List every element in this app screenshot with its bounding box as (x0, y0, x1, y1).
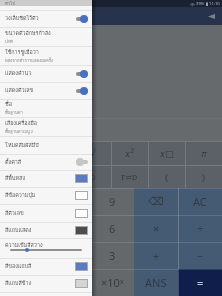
staticText: + (153, 248, 160, 263)
staticText: ) (202, 171, 206, 183)
staticText: 1 (19, 248, 26, 263)
staticText: 39% (196, 1, 205, 7)
button[interactable]: วงเล็บชิดไว้ตัว (0, 10, 92, 27)
staticText: 2 (64, 248, 71, 263)
staticText: 5 (64, 221, 71, 236)
button[interactable]: แสดงตัวเลข (0, 82, 92, 99)
staticText: 0 (19, 275, 26, 290)
staticText: พื้นฐานค่า (5, 109, 23, 116)
staticText: ( (165, 171, 169, 183)
staticText: สีแถบแสดง (5, 226, 32, 235)
staticText: ใช้การชูเมือว่า (5, 48, 39, 57)
button[interactable]: x² (111, 141, 148, 165)
button[interactable]: สีข้อความปุ่ม (0, 187, 92, 204)
button[interactable]: log (37, 165, 74, 188)
staticText: ทั่วไป (5, 0, 15, 6)
button[interactable]: เสียงเครื่องมือ (0, 117, 92, 136)
button[interactable]: ÷ (178, 215, 222, 242)
staticText: F⇄D (121, 172, 138, 182)
button[interactable]: 1 (0, 242, 45, 269)
button[interactable]: 6 (90, 215, 134, 242)
staticText: π (201, 147, 207, 159)
button[interactable]: × (134, 215, 178, 242)
button[interactable]: x□ (148, 141, 185, 165)
staticText: ขนาดตัวอักษรกำลัง (5, 29, 51, 38)
button[interactable]: 3 (90, 242, 134, 269)
button[interactable]: sin (0, 141, 37, 165)
button[interactable]: 8 (45, 188, 90, 215)
button[interactable]: ×10ˣ (90, 269, 134, 296)
staticText: − (197, 248, 204, 263)
staticText: sin (12, 147, 25, 159)
button[interactable]: ) (185, 165, 222, 188)
staticText: cos (49, 147, 63, 159)
staticText: × (153, 221, 160, 236)
staticText: ตั้งค่าสี (5, 158, 22, 167)
staticText: 9 (109, 194, 116, 209)
button[interactable]: Collapse panel (205, 10, 218, 23)
button[interactable]: ANS (134, 269, 178, 296)
button[interactable]: ⌫ (134, 188, 178, 215)
staticText: ANS (145, 275, 167, 290)
button[interactable]: แสดงคํานว (0, 65, 92, 82)
staticText: โหมดสัมผัสมีบั (5, 141, 39, 150)
button[interactable]: 0 (0, 269, 45, 296)
button[interactable]: สีพื้นหลัง (0, 170, 92, 187)
button[interactable]: π (185, 141, 222, 165)
button[interactable]: cos (37, 141, 74, 165)
button[interactable]: ชื่อ (0, 99, 92, 117)
button[interactable]: 4 (0, 215, 45, 242)
staticText: 6 (109, 221, 116, 236)
staticText: ∫ (16, 172, 21, 182)
button[interactable]: F⇄D (111, 165, 148, 188)
staticText: ÷ (197, 221, 204, 236)
staticText: เสียงเครื่องมือ (5, 119, 37, 128)
button[interactable]: 9 (90, 188, 134, 215)
button[interactable]: − (178, 242, 222, 269)
staticText: x□ (160, 147, 174, 159)
staticText: ▫ (89, 172, 96, 182)
staticText: สีของแถบสี (5, 262, 32, 271)
staticText: 8 (64, 194, 71, 209)
button[interactable]: ขนาดตัวอักษรกำลัง (0, 27, 92, 46)
button[interactable]: 2 (45, 242, 90, 269)
staticText: ×10ˣ (101, 275, 124, 290)
button[interactable]: สีตัวเลข (0, 204, 92, 222)
staticText: ความเข้มสีสว่าง (5, 241, 43, 250)
button[interactable]: = (178, 269, 222, 296)
button[interactable]: 5 (45, 215, 90, 242)
staticText: 4 (19, 221, 26, 236)
button[interactable]: สีแถบสีข้าง (0, 275, 92, 292)
staticText: 11:10 (209, 1, 220, 7)
staticText: สีแถบสีข้าง (5, 279, 32, 288)
staticText: 3 (109, 248, 116, 263)
staticText: . (66, 275, 69, 290)
button[interactable]: AC (178, 188, 222, 215)
staticText: สีพื้นหลัง (5, 174, 26, 183)
staticText: หลังจากทำการแสดงผลครั้ง (5, 57, 53, 64)
button[interactable]: + (134, 242, 178, 269)
button[interactable]: ความเข้มสีสว่าง (0, 238, 92, 258)
staticText: ชื่อ (5, 100, 12, 109)
button[interactable]: ∫ (0, 165, 37, 188)
staticText: = (197, 275, 204, 290)
button[interactable]: ใช้การชูเมือว่า (0, 46, 92, 65)
staticText: √ (90, 148, 96, 158)
staticText: แสดงคํานว (5, 69, 32, 78)
button[interactable]: ▫ (74, 165, 111, 188)
staticText: x² (125, 147, 134, 159)
button[interactable]: ( (148, 165, 185, 188)
button[interactable]: . (45, 269, 90, 296)
staticText: สีข้อความปุ่ม (5, 191, 36, 200)
button[interactable]: ตั้งค่าสี (0, 154, 92, 170)
button[interactable]: √ (74, 141, 111, 165)
staticText: ⌫ (148, 195, 164, 208)
staticText: พื้นฐานค่าเมนู 2 (5, 128, 34, 135)
button[interactable]: 7 (0, 188, 45, 215)
button[interactable]: สีของแถบสี (0, 258, 92, 275)
staticText: สีตัวเลข (5, 209, 24, 218)
staticText: 7 (19, 194, 26, 209)
button[interactable]: สีแถบแสดง (0, 222, 92, 238)
button[interactable]: โหมดสัมผัสมีบั (0, 136, 92, 154)
